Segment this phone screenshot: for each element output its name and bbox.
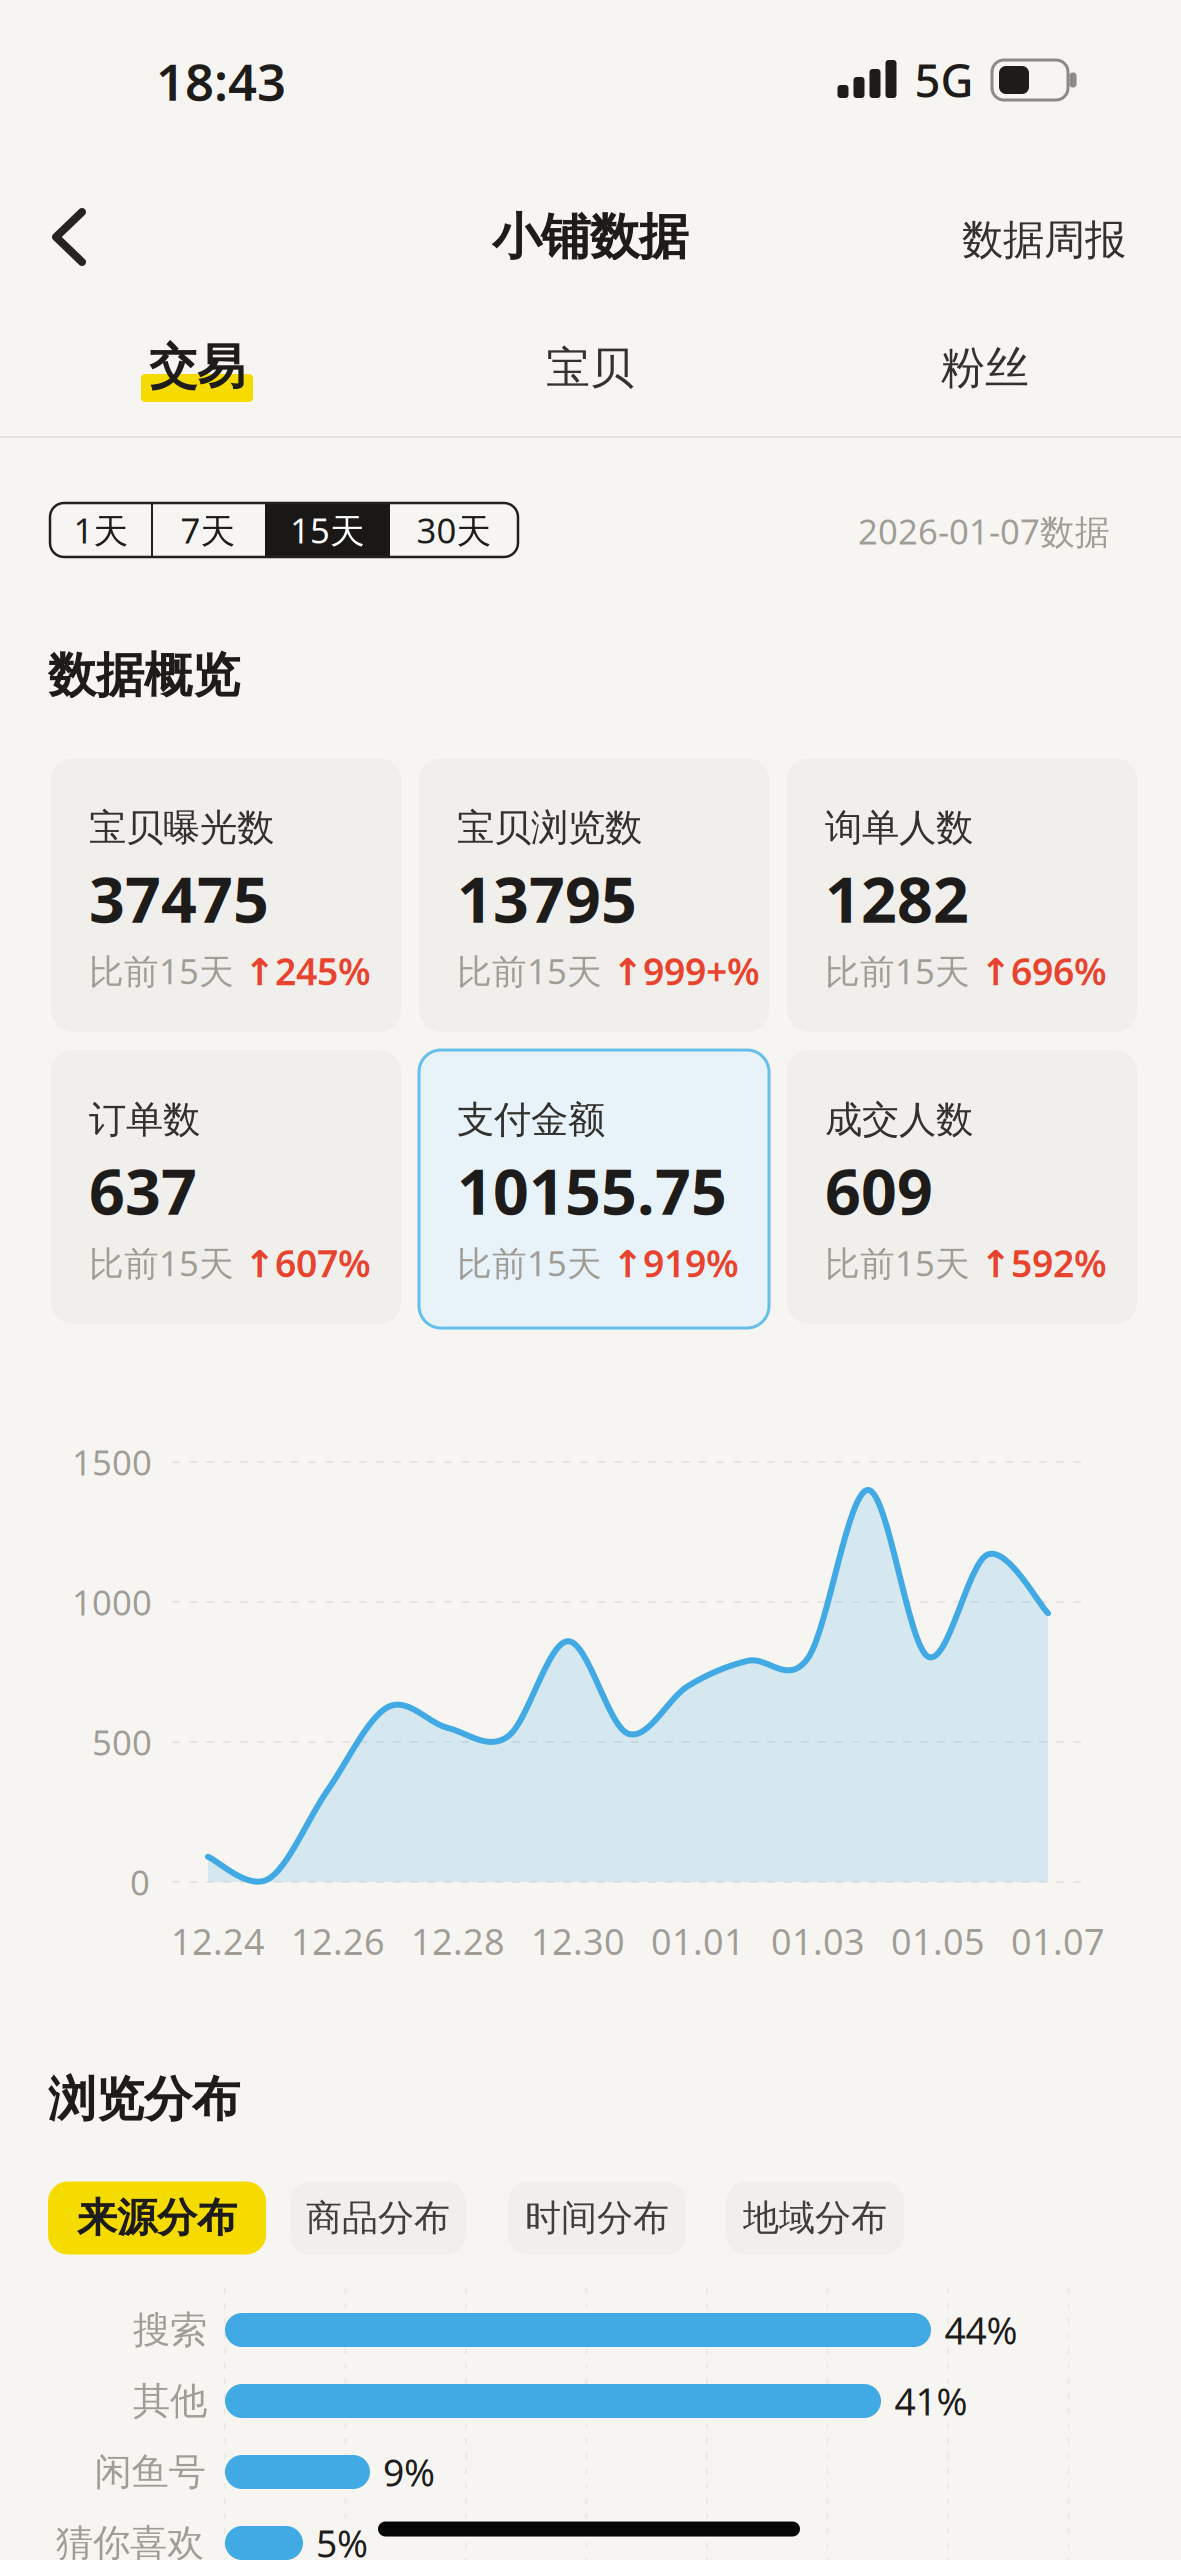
staticText: 41% [894,2376,967,2426]
button[interactable]: 数据周报 [962,215,1126,265]
button[interactable]: 支付金额 [419,1050,769,1328]
button[interactable]: 宝贝浏览数 [419,758,769,1032]
staticText: 成交人数 [825,1097,973,1143]
staticText: 浏览分布 [48,2070,240,2129]
staticText: 18:43 [156,47,286,115]
button[interactable]: 成交人数 [787,1050,1137,1324]
button[interactable]: 交易 [149,337,245,396]
staticText: 小铺数据 [492,207,688,267]
staticText: 1282 [825,857,969,940]
button[interactable]: 15天 [265,503,390,557]
button[interactable]: 7天 [153,503,263,557]
staticText: 其他 [133,2378,207,2424]
staticText: ↑999+% [612,946,760,996]
staticText: ↑919% [612,1238,739,1288]
button[interactable]: 商品分布 [290,2181,466,2254]
staticText: 10155.75 [457,1149,727,1232]
staticText: 数据概览 [48,646,240,705]
staticText: 9% [383,2447,435,2497]
staticText: 01.05 [891,1917,985,1965]
staticText: ↑245% [244,946,371,996]
staticText: 37475 [89,857,269,940]
staticText: 5% [316,2518,368,2560]
staticText: 比前15天 [457,948,602,994]
staticText: 地域分布 [743,2196,887,2240]
staticText: ↑592% [980,1238,1107,1288]
button[interactable]: 时间分布 [508,2181,686,2254]
staticText: 13795 [457,857,637,940]
staticText: 闲鱼号 [94,2449,205,2495]
button[interactable]: 地域分布 [726,2181,904,2254]
staticText: 44% [944,2305,1017,2355]
button[interactable]: 粉丝 [941,341,1029,395]
button[interactable]: 宝贝曝光数 [51,758,401,1032]
staticText: 宝贝曝光数 [89,805,274,851]
staticText: 12.26 [291,1917,385,1965]
staticText: 搜索 [133,2307,207,2353]
button[interactable]: 宝贝 [546,341,634,395]
staticText: 粉丝 [941,341,1029,395]
staticText: 12.28 [411,1917,505,1965]
staticText: 宝贝 [546,341,634,395]
staticText: 比前15天 [825,948,970,994]
staticText: 637 [89,1149,197,1232]
staticText: 支付金额 [457,1097,605,1143]
staticText: ↑607% [244,1238,371,1288]
staticText: 7天 [180,507,235,553]
staticText: 比前15天 [89,948,234,994]
staticText: 01.07 [1011,1917,1105,1965]
staticText: 来源分布 [77,2193,237,2242]
staticText: 比前15天 [89,1240,234,1286]
staticText: 12.30 [531,1917,625,1965]
staticText: 30天 [416,507,491,553]
staticText: 2026-01-07数据 [858,508,1110,554]
staticText: 01.01 [651,1917,745,1965]
staticText: 比前15天 [457,1240,602,1286]
staticText: 1天 [73,507,128,553]
staticText: ↑696% [980,946,1107,996]
staticText: 比前15天 [825,1240,970,1286]
staticText: 0 [130,1859,150,1905]
staticText: 时间分布 [525,2196,669,2240]
staticText: 1000 [72,1579,152,1625]
staticText: 15天 [290,507,365,553]
staticText: 询单人数 [825,805,973,851]
staticText: 5G [914,50,973,110]
button[interactable]: 1天 [51,503,151,557]
button[interactable]: Back [42,202,112,272]
staticText: 500 [92,1719,152,1765]
staticText: 猜你喜欢 [56,2520,204,2560]
staticText: 交易 [149,337,245,396]
staticText: 01.03 [771,1917,865,1965]
staticText: 609 [825,1149,933,1232]
button[interactable]: 来源分布 [48,2181,266,2254]
staticText: 数据周报 [962,215,1126,265]
staticText: 订单数 [89,1097,200,1143]
button[interactable]: 30天 [391,503,517,557]
button[interactable]: 订单数 [51,1050,401,1324]
staticText: 1500 [72,1439,152,1485]
staticText: 宝贝浏览数 [457,805,642,851]
staticText: 12.24 [171,1917,265,1965]
staticText: 商品分布 [306,2196,450,2240]
button[interactable]: 询单人数 [787,758,1137,1032]
